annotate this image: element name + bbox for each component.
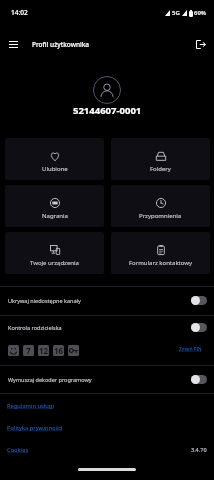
button[interactable]: Foldery [111,138,210,180]
button[interactable]: Cookies [7,446,29,454]
staticText: Twoje urządzenia [30,259,79,267]
button[interactable]: Kontrola rodzicielska [0,315,214,340]
staticText: Nagrania [42,212,68,220]
button[interactable]: Twoje urządzenia [5,232,104,274]
button[interactable]: Formularz kontaktowy [111,232,210,274]
button[interactable]: Wymuszaj dekoder programowy [0,365,214,394]
staticText: 7 [26,345,31,356]
staticText: 5G [172,9,180,17]
staticText: Kontrola rodzicielska [8,324,191,331]
staticText: Profil użytkownika [32,40,90,49]
button[interactable]: Nagrania [5,185,104,227]
button[interactable]: 12 [38,345,49,356]
staticText: Przypomnienia [139,212,182,220]
button[interactable]: Menu [3,34,23,54]
button[interactable]: Zmień PIN [179,348,202,354]
staticText: 12 [39,345,49,356]
button[interactable]: 16 [53,345,64,356]
staticText: 14:02 [11,8,28,17]
button[interactable]: Dla dorosłych [68,345,79,356]
staticText: Ulubione [42,165,68,173]
button[interactable]: Ulubione [5,138,104,180]
button[interactable]: Polityka prywatności [7,424,63,432]
staticText: Ukrywaj niedostępne kanały [8,297,191,304]
button[interactable]: Regulamin usługi [7,402,54,410]
staticText: 16 [54,345,64,356]
button[interactable]: Dla wszystkich [8,345,19,356]
staticText: 69% [194,9,206,17]
staticText: 52144607-0001 [73,104,142,117]
button[interactable]: Wyloguj [191,34,211,54]
button[interactable]: Ukrywaj niedostępne kanały [0,286,214,315]
staticText: 3.4.70 [191,446,207,453]
button[interactable]: 7 [23,345,34,356]
staticText: Formularz kontaktowy [129,259,193,267]
staticText: Wymuszaj dekoder programowy [8,376,191,383]
button[interactable]: Przypomnienia [111,185,210,227]
staticText: Foldery [150,165,171,173]
